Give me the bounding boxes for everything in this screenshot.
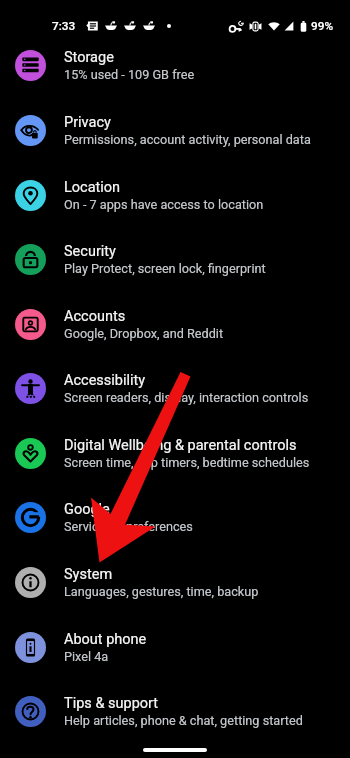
staticText: Accounts [64,308,126,325]
staticText: 7:33 [52,19,76,33]
staticText: Permissions, account activity, personal … [64,132,311,147]
button[interactable]: Accessibility [0,356,350,420]
staticText: Google [64,501,110,518]
button[interactable]: Digital Wellbeing & parental controls [0,421,350,485]
button[interactable]: Storage [0,33,350,97]
button[interactable]: Location [0,163,350,227]
staticText: Digital Wellbeing & parental controls [64,437,297,454]
staticText: Play Protect, screen lock, fingerprint [64,261,266,276]
staticText: System [64,566,113,583]
staticText: Screen readers, display, interaction con… [64,390,309,405]
staticText: About phone [64,631,147,648]
staticText: 99% [311,19,334,33]
staticText: Storage [64,49,114,66]
staticText: Services & preferences [64,519,193,534]
staticText: Screen time, app timers, bedtime schedul… [64,455,310,470]
staticText: Security [64,243,116,260]
button[interactable]: System [0,550,350,614]
button[interactable]: About phone [0,615,350,679]
button[interactable]: Accounts [0,292,350,356]
staticText: Pixel 4a [64,649,109,664]
button[interactable]: Privacy [0,98,350,162]
button[interactable]: Tips & support [0,679,350,743]
staticText: Tips & support [64,695,159,712]
staticText: Help articles, phone & chat, getting sta… [64,713,303,728]
button[interactable]: Security [0,227,350,291]
staticText: 15% used - 109 GB free [64,67,195,82]
staticText: Languages, gestures, time, backup [64,584,259,599]
staticText: On - 7 apps have access to location [64,197,264,212]
staticText: Location [64,179,121,196]
staticText: Google, Dropbox, and Reddit [64,326,224,341]
staticText: Accessibility [64,372,146,389]
staticText: Privacy [64,114,111,131]
button[interactable]: Google [0,485,350,549]
